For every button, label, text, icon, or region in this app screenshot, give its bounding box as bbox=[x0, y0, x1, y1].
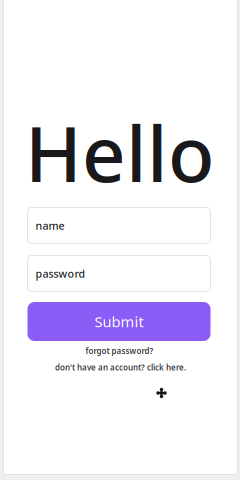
button[interactable]: name bbox=[27, 207, 210, 243]
button[interactable]: forgot password? bbox=[59, 345, 179, 357]
button[interactable]: don't have an account? click here. bbox=[35, 361, 205, 373]
staticText: forgot password? bbox=[85, 345, 153, 356]
staticText: don't have an account? click here. bbox=[55, 362, 186, 373]
staticText: Hello bbox=[25, 102, 214, 203]
staticText: Submit bbox=[94, 312, 143, 331]
staticText: password bbox=[35, 266, 85, 281]
button[interactable]: password bbox=[27, 255, 210, 291]
staticText: name bbox=[35, 218, 64, 233]
button[interactable]: Submit bbox=[27, 302, 210, 341]
